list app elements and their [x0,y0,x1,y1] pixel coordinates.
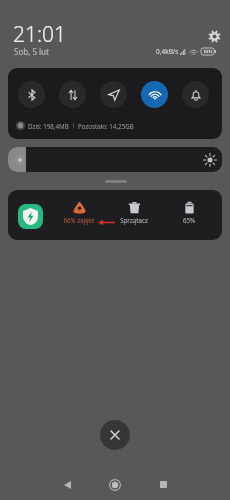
button[interactable]: Back [54,471,81,498]
button[interactable]: Settings [205,27,224,46]
button[interactable]: Clear all notifications [100,420,130,450]
staticText: Sob, 5 lut [14,46,49,57]
button[interactable]: Bluetooth [18,81,45,108]
staticText: 0,4kB/s [156,47,179,56]
button[interactable]: Do not disturb [182,81,209,108]
staticText: 65% [165,216,213,224]
staticText: 21:01 [13,20,67,49]
button[interactable]: Home [101,471,128,498]
button[interactable]: Brightness [8,147,222,172]
staticText: Dziś: 198,4MB [28,122,69,130]
staticText: 66% zajęte [55,216,103,224]
button[interactable]: Recent apps [150,471,177,498]
button[interactable]: 66% zajęte [8,190,222,240]
button[interactable]: 65% [165,201,213,224]
button[interactable]: Location [100,81,127,108]
button[interactable]: 66% zajęte [55,201,103,224]
button[interactable]: Sprzątacz [110,201,158,224]
button[interactable]: Mobile data [59,81,86,108]
staticText: Pozostało: 14,25GB [78,122,134,130]
button[interactable]: Wi-Fi [141,81,168,108]
staticText: Sprzątacz [110,216,158,224]
